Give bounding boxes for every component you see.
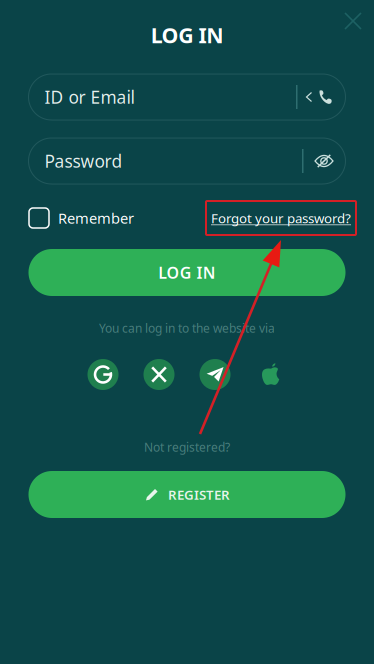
button[interactable]: Close <box>336 4 370 38</box>
staticText: Password <box>44 149 122 172</box>
button[interactable]: LOG IN <box>28 249 345 296</box>
staticText: ID or Email <box>44 85 134 108</box>
staticText: Forgot your password? <box>211 209 351 227</box>
button[interactable]: Log in with Google <box>87 359 118 390</box>
staticText: LOG IN <box>158 262 216 283</box>
button[interactable]: Remember <box>29 208 134 228</box>
button[interactable]: Choose country code <box>297 75 345 119</box>
staticText: REGISTER <box>168 486 230 503</box>
button[interactable]: REGISTER <box>28 471 345 518</box>
button[interactable]: Log in with Telegram <box>199 359 230 390</box>
button[interactable]: Show password <box>303 139 345 183</box>
button[interactable]: Log in with Apple <box>255 359 286 390</box>
button[interactable]: Log in with X <box>143 359 174 390</box>
staticText: You can log in to the website via <box>99 320 275 336</box>
staticText: LOG IN <box>151 21 223 49</box>
staticText: Not registered? <box>144 439 230 455</box>
staticText: Remember <box>58 208 134 228</box>
button[interactable]: Forgot your password? <box>206 201 356 235</box>
